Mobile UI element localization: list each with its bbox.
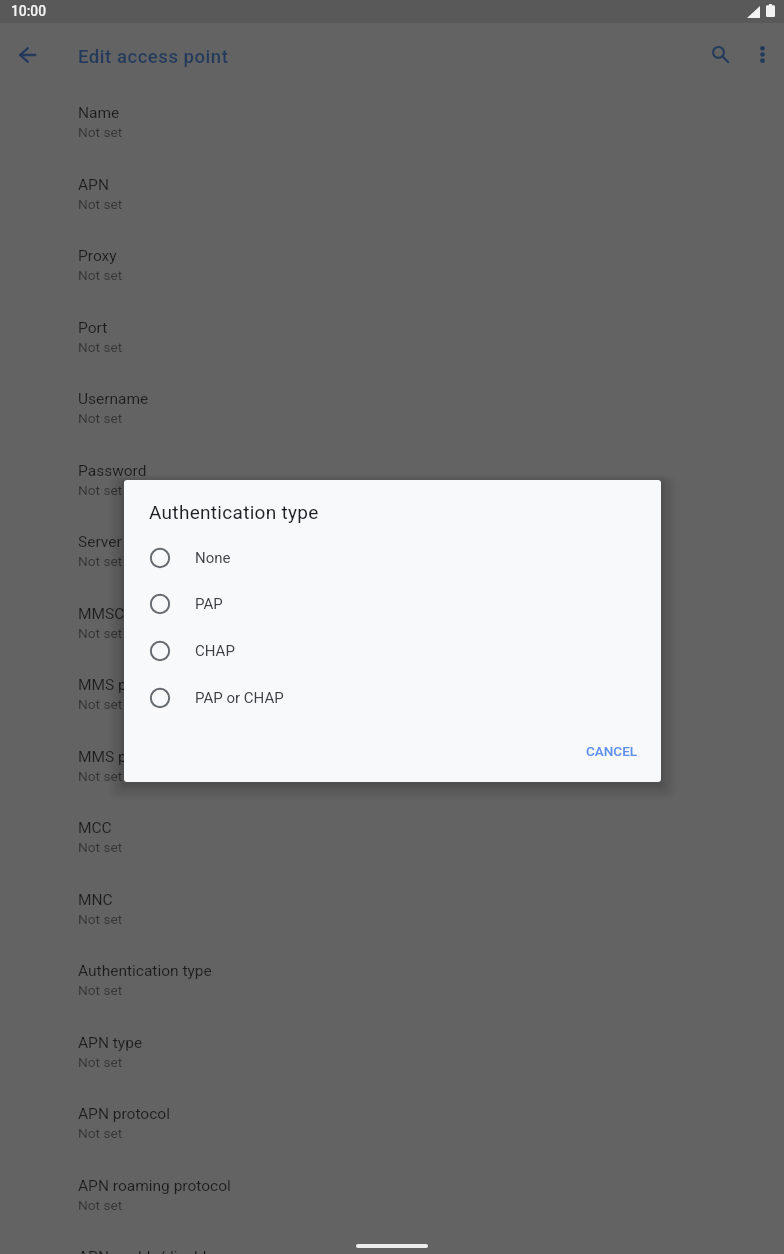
staticText: Not set	[78, 482, 123, 498]
staticText: Edit access point	[78, 46, 229, 68]
staticText: PAP or CHAP	[195, 689, 284, 707]
staticText: Not set	[78, 696, 123, 712]
button[interactable]: CANCEL	[578, 737, 646, 765]
button[interactable]: Search	[699, 33, 741, 75]
staticText: Not set	[78, 410, 123, 426]
button[interactable]: PAP or CHAP	[124, 674, 661, 721]
staticText: Authentication type	[149, 501, 319, 523]
staticText: CANCEL	[586, 743, 638, 759]
staticText: Not set	[78, 196, 123, 212]
staticText: MCC	[78, 819, 112, 837]
button[interactable]: Proxy	[0, 231, 784, 303]
button[interactable]: APN enable/disable	[0, 1232, 784, 1254]
staticText: Username	[78, 390, 149, 408]
button[interactable]: Server	[0, 517, 784, 589]
staticText: Not set	[78, 1125, 123, 1141]
button[interactable]: MMS proxy	[0, 660, 784, 732]
staticText: Not set	[78, 839, 123, 855]
staticText: APN protocol	[78, 1105, 170, 1123]
staticText: PAP	[195, 595, 223, 613]
staticText: MMSC	[78, 605, 125, 623]
staticText: CHAP	[195, 642, 235, 660]
staticText: MMS port	[78, 748, 147, 766]
staticText: Not set	[78, 1054, 123, 1070]
staticText: Not set	[78, 911, 123, 927]
button[interactable]: Authentication type	[0, 946, 784, 1018]
button[interactable]: Username	[0, 374, 784, 446]
button[interactable]: CHAP	[124, 627, 661, 674]
button[interactable]: Name	[0, 88, 784, 160]
staticText: Not set	[78, 768, 123, 784]
button[interactable]: APN protocol	[0, 1089, 784, 1161]
button[interactable]: MMS port	[0, 732, 784, 804]
staticText: Not set	[78, 625, 123, 641]
staticText: Not set	[78, 339, 123, 355]
staticText: APN	[78, 176, 109, 194]
button[interactable]: PAP	[124, 580, 661, 627]
button[interactable]: MNC	[0, 875, 784, 947]
button[interactable]: None	[124, 534, 661, 581]
button[interactable]: APN type	[0, 1018, 784, 1090]
staticText: Not set	[78, 1197, 123, 1213]
staticText: MMS proxy	[78, 676, 156, 694]
staticText: MNC	[78, 891, 113, 909]
staticText: Name	[78, 104, 120, 122]
staticText: Port	[78, 319, 108, 337]
staticText: APN roaming protocol	[78, 1177, 231, 1195]
button[interactable]: MMSC	[0, 589, 784, 661]
staticText: Password	[78, 462, 147, 480]
staticText: APN type	[78, 1034, 143, 1052]
staticText: Server	[78, 533, 122, 551]
button[interactable]: Navigate up	[9, 37, 45, 73]
button[interactable]: Password	[0, 446, 784, 518]
button[interactable]: MCC	[0, 803, 784, 875]
staticText: Not set	[78, 267, 123, 283]
staticText: Not set	[78, 124, 123, 140]
button[interactable]: APN roaming protocol	[0, 1161, 784, 1233]
staticText: Not set	[78, 982, 123, 998]
staticText: APN enable/disable	[78, 1248, 215, 1254]
staticText: Authentication type	[78, 962, 212, 980]
button[interactable]: More options	[741, 33, 783, 75]
staticText: 10:00	[11, 3, 47, 19]
staticText: Proxy	[78, 247, 117, 265]
staticText: None	[195, 549, 231, 567]
staticText: Not set	[78, 553, 123, 569]
